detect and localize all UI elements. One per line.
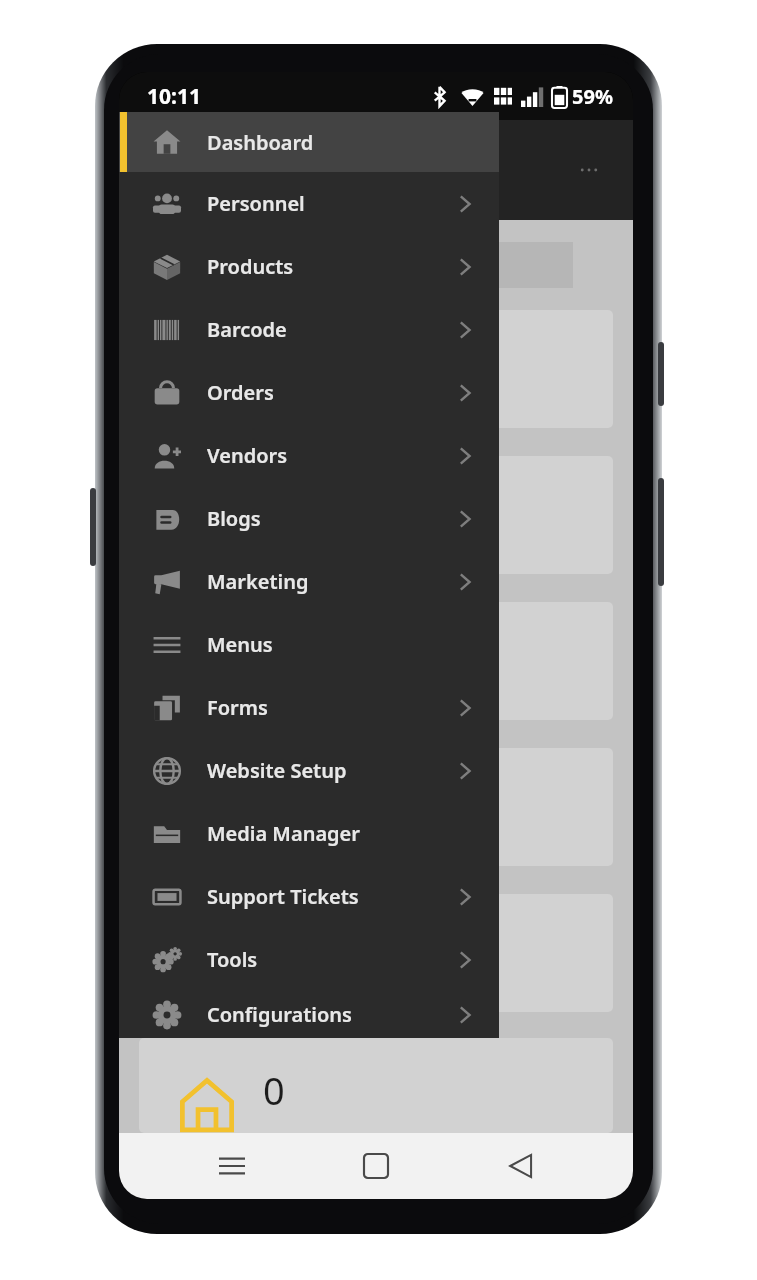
- staticText: Dashboard Option: [261, 251, 444, 280]
- staticText: Products: [207, 253, 294, 280]
- button[interactable]: Media Manager: [119, 802, 499, 865]
- button[interactable]: Products: [119, 235, 499, 298]
- staticText: Forms: [207, 694, 268, 721]
- staticText: 59%: [572, 83, 613, 110]
- staticText: Support Tickets: [207, 883, 359, 910]
- button[interactable]: Vendors: [119, 424, 499, 487]
- button[interactable]: [139, 310, 613, 428]
- button[interactable]: Personnel: [119, 172, 499, 235]
- button[interactable]: [139, 602, 613, 720]
- button[interactable]: [139, 894, 613, 1012]
- staticText: Tools: [207, 946, 258, 973]
- button[interactable]: Home: [344, 1134, 408, 1198]
- button[interactable]: Support Tickets: [119, 865, 499, 928]
- button[interactable]: Forms: [119, 676, 499, 739]
- staticText: Blogs: [207, 505, 261, 532]
- staticText: Vendors: [207, 442, 288, 469]
- button[interactable]: More options: [567, 148, 611, 192]
- staticText: Orders: [207, 379, 274, 406]
- button[interactable]: Tools: [119, 928, 499, 991]
- button[interactable]: Dashboard: [119, 112, 499, 172]
- staticText: Barcode: [207, 316, 287, 343]
- staticText: Personnel: [207, 190, 305, 217]
- button[interactable]: Orders: [119, 361, 499, 424]
- button[interactable]: Recent apps: [200, 1134, 264, 1198]
- button[interactable]: Barcode: [119, 298, 499, 361]
- staticText: Marketing: [207, 568, 309, 595]
- button[interactable]: 0: [139, 1038, 613, 1133]
- button[interactable]: [139, 748, 613, 866]
- staticText: Media Manager: [207, 820, 360, 847]
- staticText: Menus: [207, 631, 273, 658]
- button[interactable]: Marketing: [119, 550, 499, 613]
- button[interactable]: Configurations: [119, 991, 499, 1038]
- staticText: Configurations: [207, 1001, 352, 1028]
- staticText: Website Setup: [207, 757, 347, 784]
- staticText: 0: [263, 1064, 285, 1116]
- staticText: 10:11: [147, 82, 201, 111]
- button[interactable]: Dashboard Option: [143, 242, 573, 288]
- button[interactable]: Back: [489, 1134, 553, 1198]
- staticText: Dashboard: [207, 129, 314, 156]
- button[interactable]: Menus: [119, 613, 499, 676]
- button[interactable]: Blogs: [119, 487, 499, 550]
- button[interactable]: Website Setup: [119, 739, 499, 802]
- button[interactable]: [139, 456, 613, 574]
